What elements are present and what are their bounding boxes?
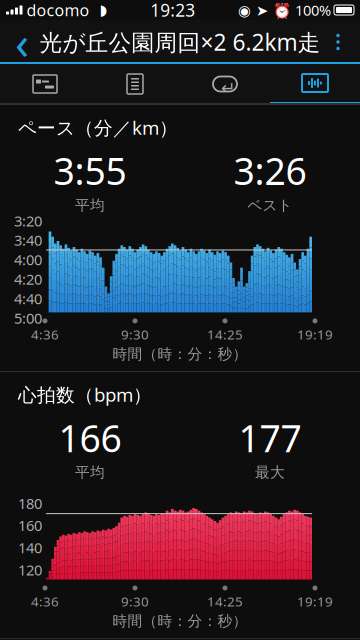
staticText: ◗ xyxy=(89,2,107,18)
button[interactable]: マップ xyxy=(0,64,90,104)
staticText: 3:20 xyxy=(14,211,42,230)
staticText: 177 xyxy=(238,413,301,462)
staticText: 平均 xyxy=(75,196,105,214)
staticText: 19:19 xyxy=(297,592,333,610)
staticText: 5:00 xyxy=(14,308,42,328)
button[interactable]: ラップ xyxy=(180,64,270,104)
button[interactable]: 詳細 xyxy=(90,64,180,104)
staticText: 時間（時：分：秒） xyxy=(112,612,247,630)
staticText: ‹ xyxy=(15,12,29,72)
staticText: ペース（分／km） xyxy=(18,115,178,140)
button[interactable]: メニュー xyxy=(316,20,360,64)
staticText: 9:30 xyxy=(121,592,149,610)
staticText: 14:25 xyxy=(207,325,243,343)
staticText: 4:40 xyxy=(14,289,42,308)
staticText: 140 xyxy=(18,538,42,557)
staticText: 120 xyxy=(18,560,42,579)
staticText: ↵ xyxy=(221,78,236,98)
staticText: 4:36 xyxy=(31,325,59,343)
staticText: 光が丘公園周回×2 6.2km走 xyxy=(39,27,320,57)
staticText: 19:19 xyxy=(297,325,333,343)
staticText: 160 xyxy=(18,516,42,535)
staticText: 3:40 xyxy=(14,230,42,250)
staticText: 3:26 xyxy=(233,146,306,195)
button[interactable]: 戻る xyxy=(0,20,44,64)
staticText: 166 xyxy=(58,413,121,462)
staticText: 最大 xyxy=(255,463,285,481)
staticText: パフォーマンスコンディション xyxy=(18,636,265,640)
staticText: docomo xyxy=(22,0,89,21)
staticText: 14:25 xyxy=(207,592,243,610)
staticText: ベスト xyxy=(247,196,292,214)
staticText: 時間（時：分：秒） xyxy=(112,345,247,363)
staticText: 180 xyxy=(18,493,42,513)
staticText: 平均 xyxy=(75,463,105,481)
staticText: 心拍数（bpm） xyxy=(18,382,152,407)
staticText: 3:55 xyxy=(53,146,126,195)
staticText: 4:36 xyxy=(31,592,59,610)
staticText: 19:23 xyxy=(150,0,195,21)
staticText: 9:30 xyxy=(121,325,149,343)
staticText: ◉ ➤ ⏰ 100% xyxy=(238,0,331,20)
button[interactable]: グラフ xyxy=(270,64,360,104)
staticText: 4:20 xyxy=(14,269,42,289)
staticText: 4:00 xyxy=(14,250,42,269)
